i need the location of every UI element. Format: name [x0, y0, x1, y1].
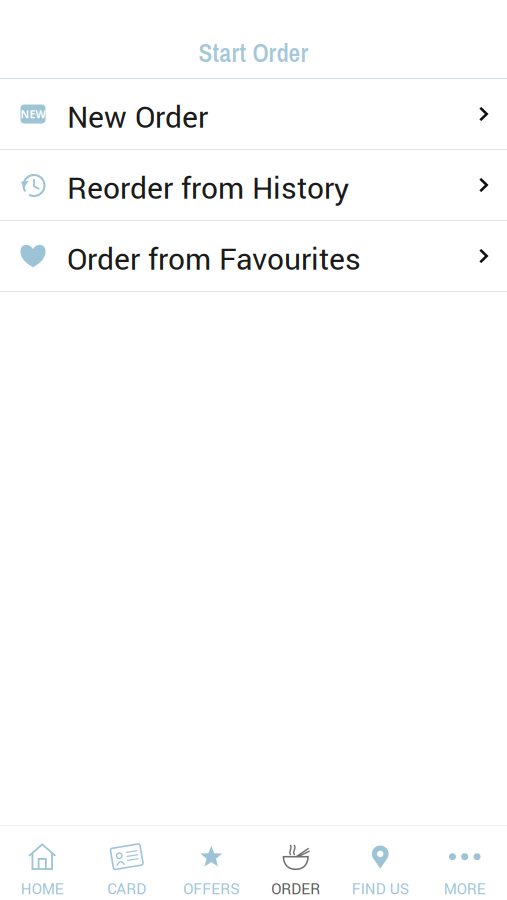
staticText: Order from Favourites: [67, 238, 361, 282]
button[interactable]: OFFERS: [169, 826, 253, 900]
staticText: Reorder from History: [67, 167, 349, 211]
staticText: NEW: [20, 107, 45, 121]
button[interactable]: HOME: [0, 826, 84, 900]
button[interactable]: ORDER: [253, 826, 338, 900]
staticText: MORE: [444, 879, 486, 900]
staticText: HOME: [21, 879, 64, 900]
button[interactable]: Order from Favourites: [0, 221, 507, 292]
staticText: CARD: [107, 879, 146, 900]
staticText: OFFERS: [183, 879, 239, 900]
staticText: FIND US: [352, 879, 409, 900]
button[interactable]: Reorder from History: [0, 150, 507, 221]
staticText: Start Order: [198, 36, 308, 70]
staticText: New Order: [67, 96, 208, 140]
button[interactable]: CARD: [84, 826, 169, 900]
button[interactable]: FIND US: [338, 826, 422, 900]
button[interactable]: NEW: [0, 79, 507, 150]
button[interactable]: MORE: [422, 826, 507, 900]
staticText: ORDER: [271, 879, 320, 900]
